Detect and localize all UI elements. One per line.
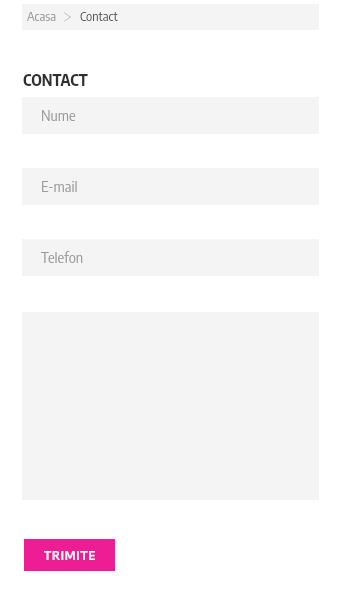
- button[interactable]: Contact: [80, 7, 118, 25]
- button[interactable]: TRIMITE: [24, 539, 115, 571]
- staticText: TRIMITE: [44, 547, 97, 563]
- staticText: Telefon: [41, 248, 84, 267]
- other: Breadcrumb separator: [64, 13, 71, 21]
- button[interactable]: Telefon: [22, 239, 319, 276]
- button[interactable]: Acasa: [27, 7, 56, 25]
- staticText: E-mail: [41, 177, 78, 196]
- button[interactable]: Nume: [22, 97, 319, 134]
- staticText: CONTACT: [23, 70, 88, 90]
- staticText: Nume: [41, 106, 76, 125]
- button[interactable]: E-mail: [22, 168, 319, 205]
- staticText: Acasa: [27, 8, 56, 24]
- staticText: Contact: [80, 8, 118, 24]
